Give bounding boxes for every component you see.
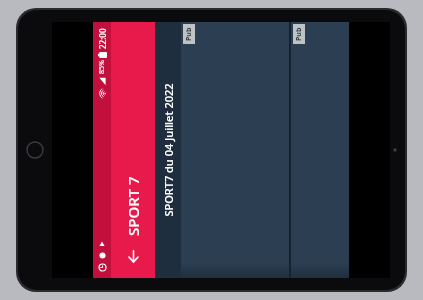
staticText: SPORT7 du 04 Juillet 2022: [161, 83, 176, 217]
staticText: Pub: [294, 27, 304, 41]
button[interactable]: Home: [25, 140, 45, 160]
button[interactable]: SPORT7 du 04 Juillet 2022: [155, 22, 181, 278]
button[interactable]: Back: [112, 236, 154, 278]
staticText: 22:00: [97, 28, 108, 49]
button[interactable]: Pub: [291, 22, 349, 278]
staticText: SPORT 7: [123, 176, 143, 236]
staticText: 85%: [97, 60, 107, 74]
staticText: Pub: [184, 27, 194, 41]
button[interactable]: Pub: [181, 22, 289, 278]
